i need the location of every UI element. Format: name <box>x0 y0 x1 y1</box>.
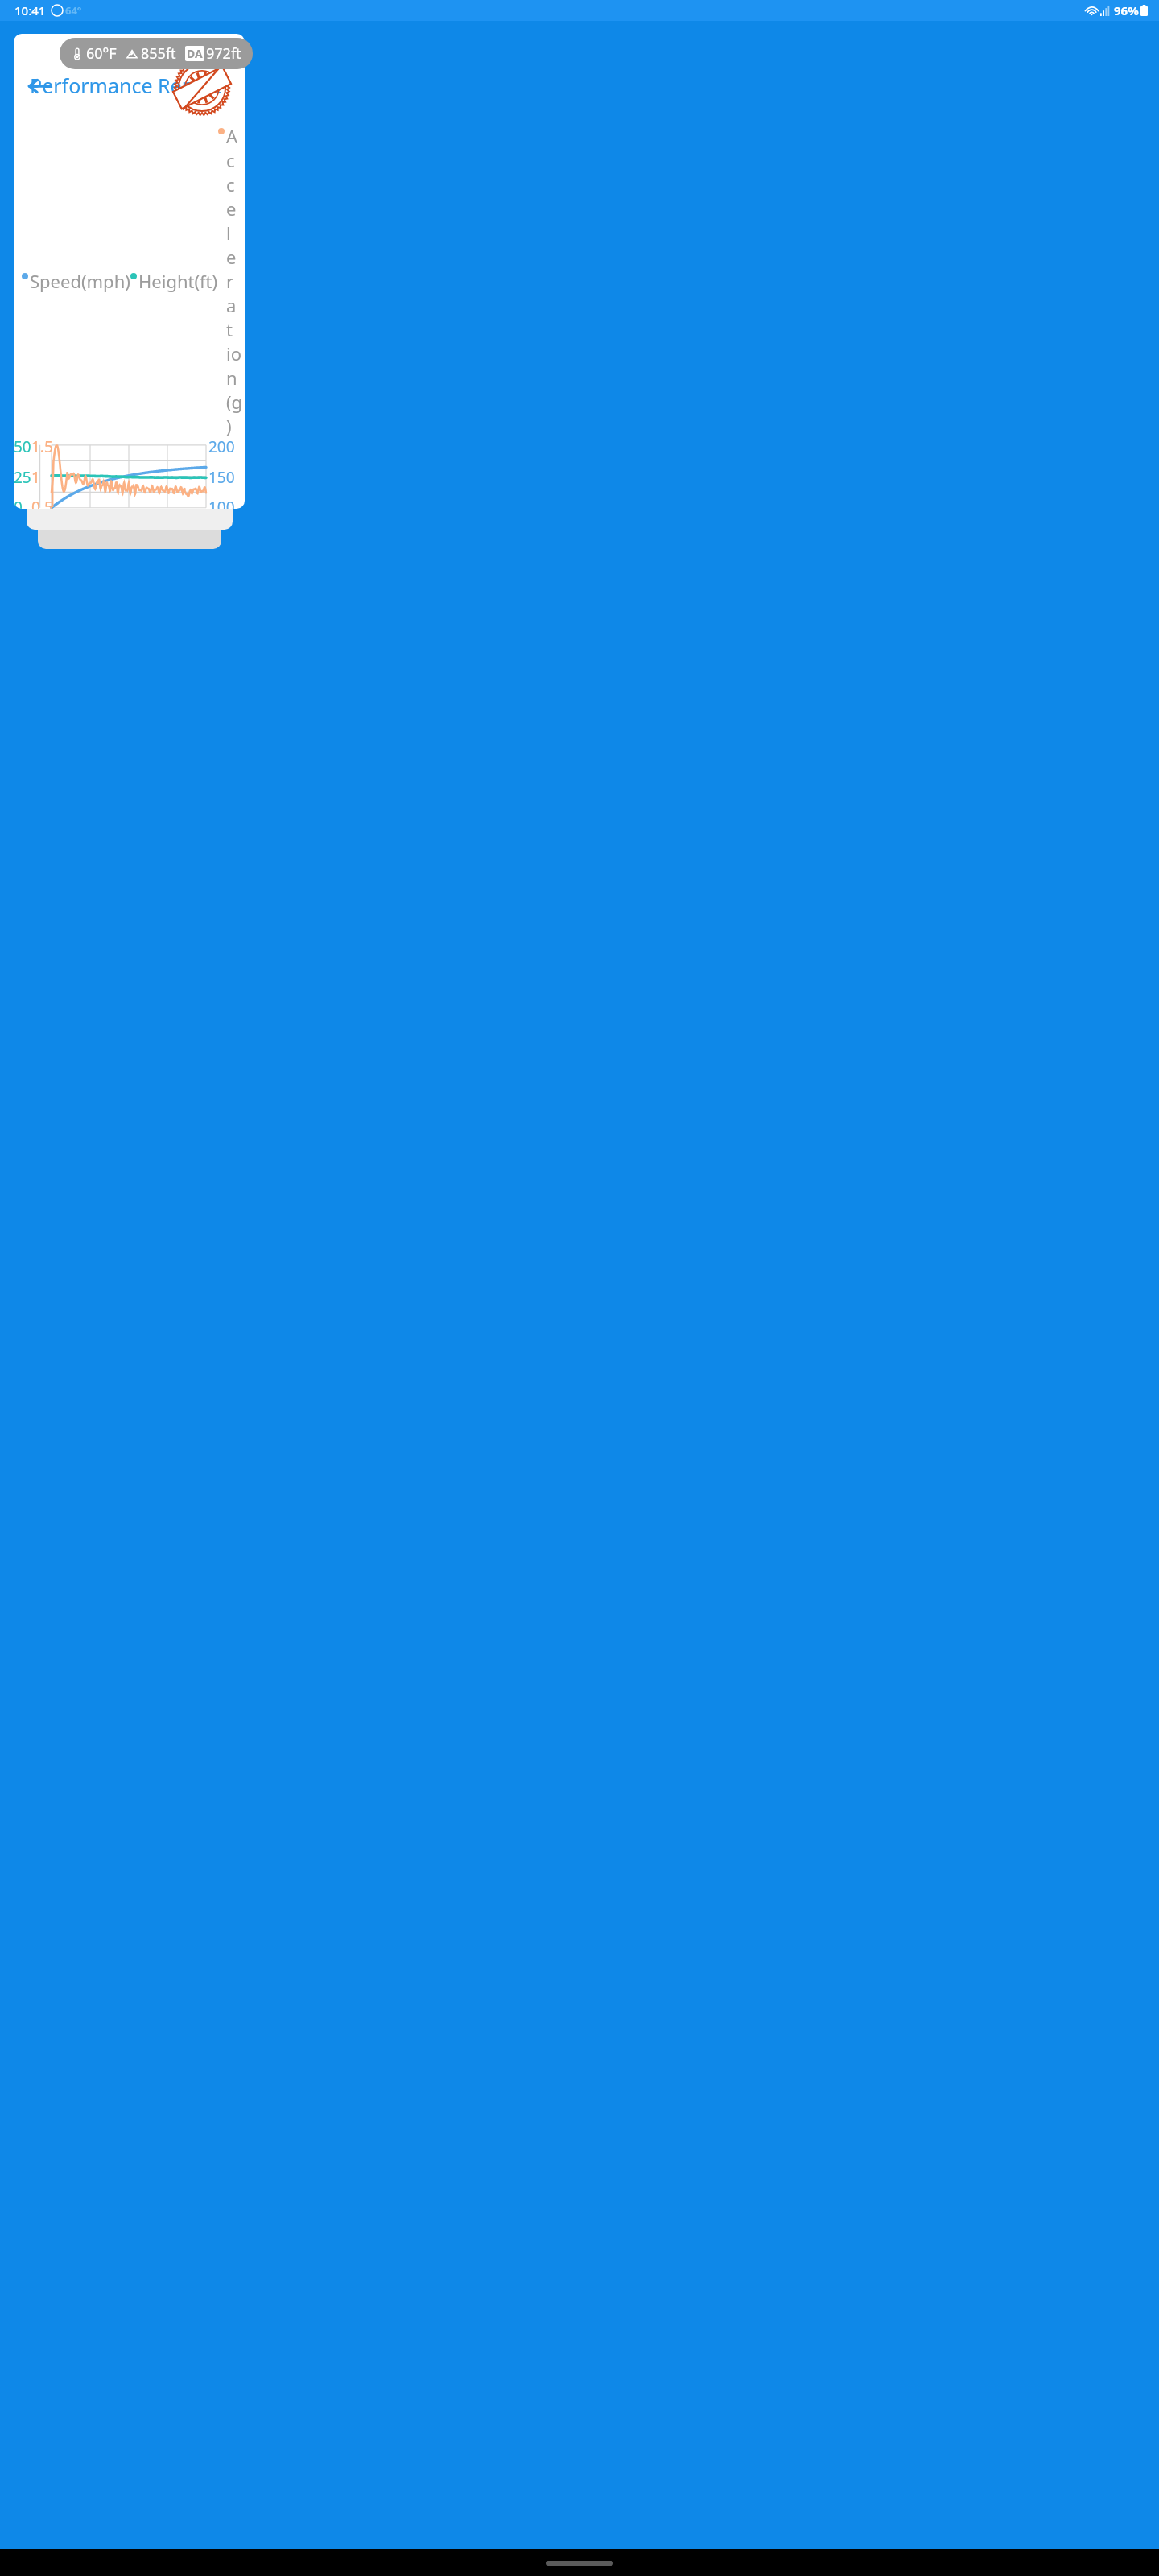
other: Temperature <box>71 47 84 60</box>
staticText: 64° <box>65 3 82 18</box>
staticText: 50 <box>14 436 31 457</box>
button[interactable]: Temperature <box>60 38 253 69</box>
staticText: 96% <box>1114 2 1139 19</box>
staticText: 200 <box>208 436 235 457</box>
staticText: 1.5 <box>31 436 53 457</box>
staticText: Performance Report <box>30 72 222 99</box>
staticText: 10:41 <box>14 2 46 19</box>
other: Altitude <box>126 47 138 60</box>
staticText: 1 <box>31 467 40 488</box>
button[interactable]: Back <box>19 65 60 107</box>
other: Valid stamp <box>166 58 238 118</box>
staticText: 60°F <box>86 43 117 64</box>
staticText: 972ft <box>206 43 241 64</box>
staticText: Speed(mph) <box>30 269 130 293</box>
staticText: 150 <box>208 467 235 488</box>
staticText: 100 <box>208 497 235 509</box>
staticText: 0 <box>14 497 23 509</box>
staticText: 855ft <box>141 43 176 64</box>
staticText: 25 <box>14 467 31 488</box>
staticText: 0.5 <box>31 497 53 509</box>
staticText: Height(ft) <box>138 269 218 293</box>
staticText: Acceleration(g) <box>226 124 237 438</box>
staticText: DA <box>187 46 203 61</box>
